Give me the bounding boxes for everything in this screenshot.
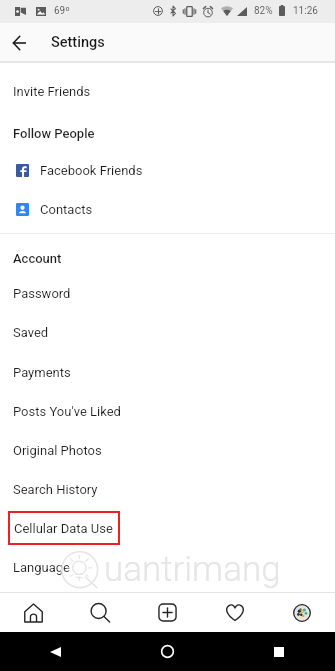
button[interactable]: Original Photos	[0, 433, 335, 467]
staticText: 11:26	[293, 5, 318, 17]
staticText: Search History	[13, 482, 98, 497]
staticText: Original Photos	[13, 443, 102, 458]
button[interactable]: Account	[0, 241, 335, 275]
button[interactable]: Facebook Friends	[0, 153, 335, 187]
staticText: Invite Friends	[13, 84, 91, 99]
button[interactable]: Home	[0, 593, 67, 632]
button[interactable]: Cellular Data Use	[0, 511, 335, 545]
staticText: uantrimang	[104, 549, 281, 590]
button[interactable]: Follow People	[0, 116, 335, 150]
button[interactable]: Contacts	[0, 192, 335, 226]
button[interactable]: Language	[0, 550, 335, 584]
staticText: Language	[13, 560, 70, 575]
staticText: Cellular Data Use	[14, 521, 113, 536]
staticText: Password	[13, 286, 71, 301]
staticText: 82%	[254, 5, 273, 17]
button[interactable]: Recents	[223, 632, 335, 671]
button[interactable]: Invite Friends	[0, 74, 335, 108]
button[interactable]: Profile	[268, 593, 335, 632]
button[interactable]: Search History	[0, 472, 335, 506]
button[interactable]: Activity	[201, 593, 268, 632]
button[interactable]: New post	[134, 593, 201, 632]
staticText: Saved	[13, 325, 49, 340]
button[interactable]: Payments	[0, 355, 335, 389]
staticText: Contacts	[40, 202, 93, 217]
button[interactable]: Password	[0, 276, 335, 310]
button[interactable]: Posts You've Liked	[0, 394, 335, 428]
button[interactable]: Back	[0, 23, 39, 61]
button[interactable]: Home	[111, 632, 223, 671]
button[interactable]: Back	[0, 632, 111, 671]
staticText: Facebook Friends	[40, 163, 143, 178]
staticText: 69º	[54, 5, 70, 17]
staticText: Settings	[51, 34, 105, 51]
staticText: Payments	[13, 365, 71, 380]
staticText: Posts You've Liked	[13, 404, 121, 419]
button[interactable]: Saved	[0, 315, 335, 349]
staticText: Account	[13, 251, 62, 266]
button[interactable]: Search	[67, 593, 134, 632]
staticText: Follow People	[13, 126, 95, 141]
